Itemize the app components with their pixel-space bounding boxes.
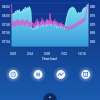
staticText: 0.00 bbox=[10, 52, 16, 56]
button[interactable]: Record bbox=[10, 68, 23, 81]
staticText: 08.02 bbox=[2, 5, 10, 9]
staticText: 07.56 bbox=[2, 31, 10, 35]
staticText: 865 bbox=[90, 31, 96, 35]
button[interactable]: Measure bbox=[77, 68, 90, 81]
staticText: 10.16 bbox=[78, 52, 86, 56]
staticText: 07.58 bbox=[2, 23, 10, 27]
staticText: 880 bbox=[90, 5, 96, 9]
staticText: 875 bbox=[90, 14, 96, 18]
staticText: 870 bbox=[90, 23, 96, 27]
staticText: 5.08 bbox=[44, 52, 50, 56]
staticText: 2.54 bbox=[27, 52, 33, 56]
button[interactable]: Analyze bbox=[55, 68, 68, 81]
staticText: 07.54 bbox=[2, 40, 10, 44]
staticText: 08.00 bbox=[2, 14, 10, 18]
staticText: 860 bbox=[90, 40, 96, 44]
button[interactable]: Pause bbox=[32, 68, 45, 81]
staticText: 7.62 bbox=[61, 52, 67, 56]
staticText: Time (sec) bbox=[42, 57, 57, 61]
